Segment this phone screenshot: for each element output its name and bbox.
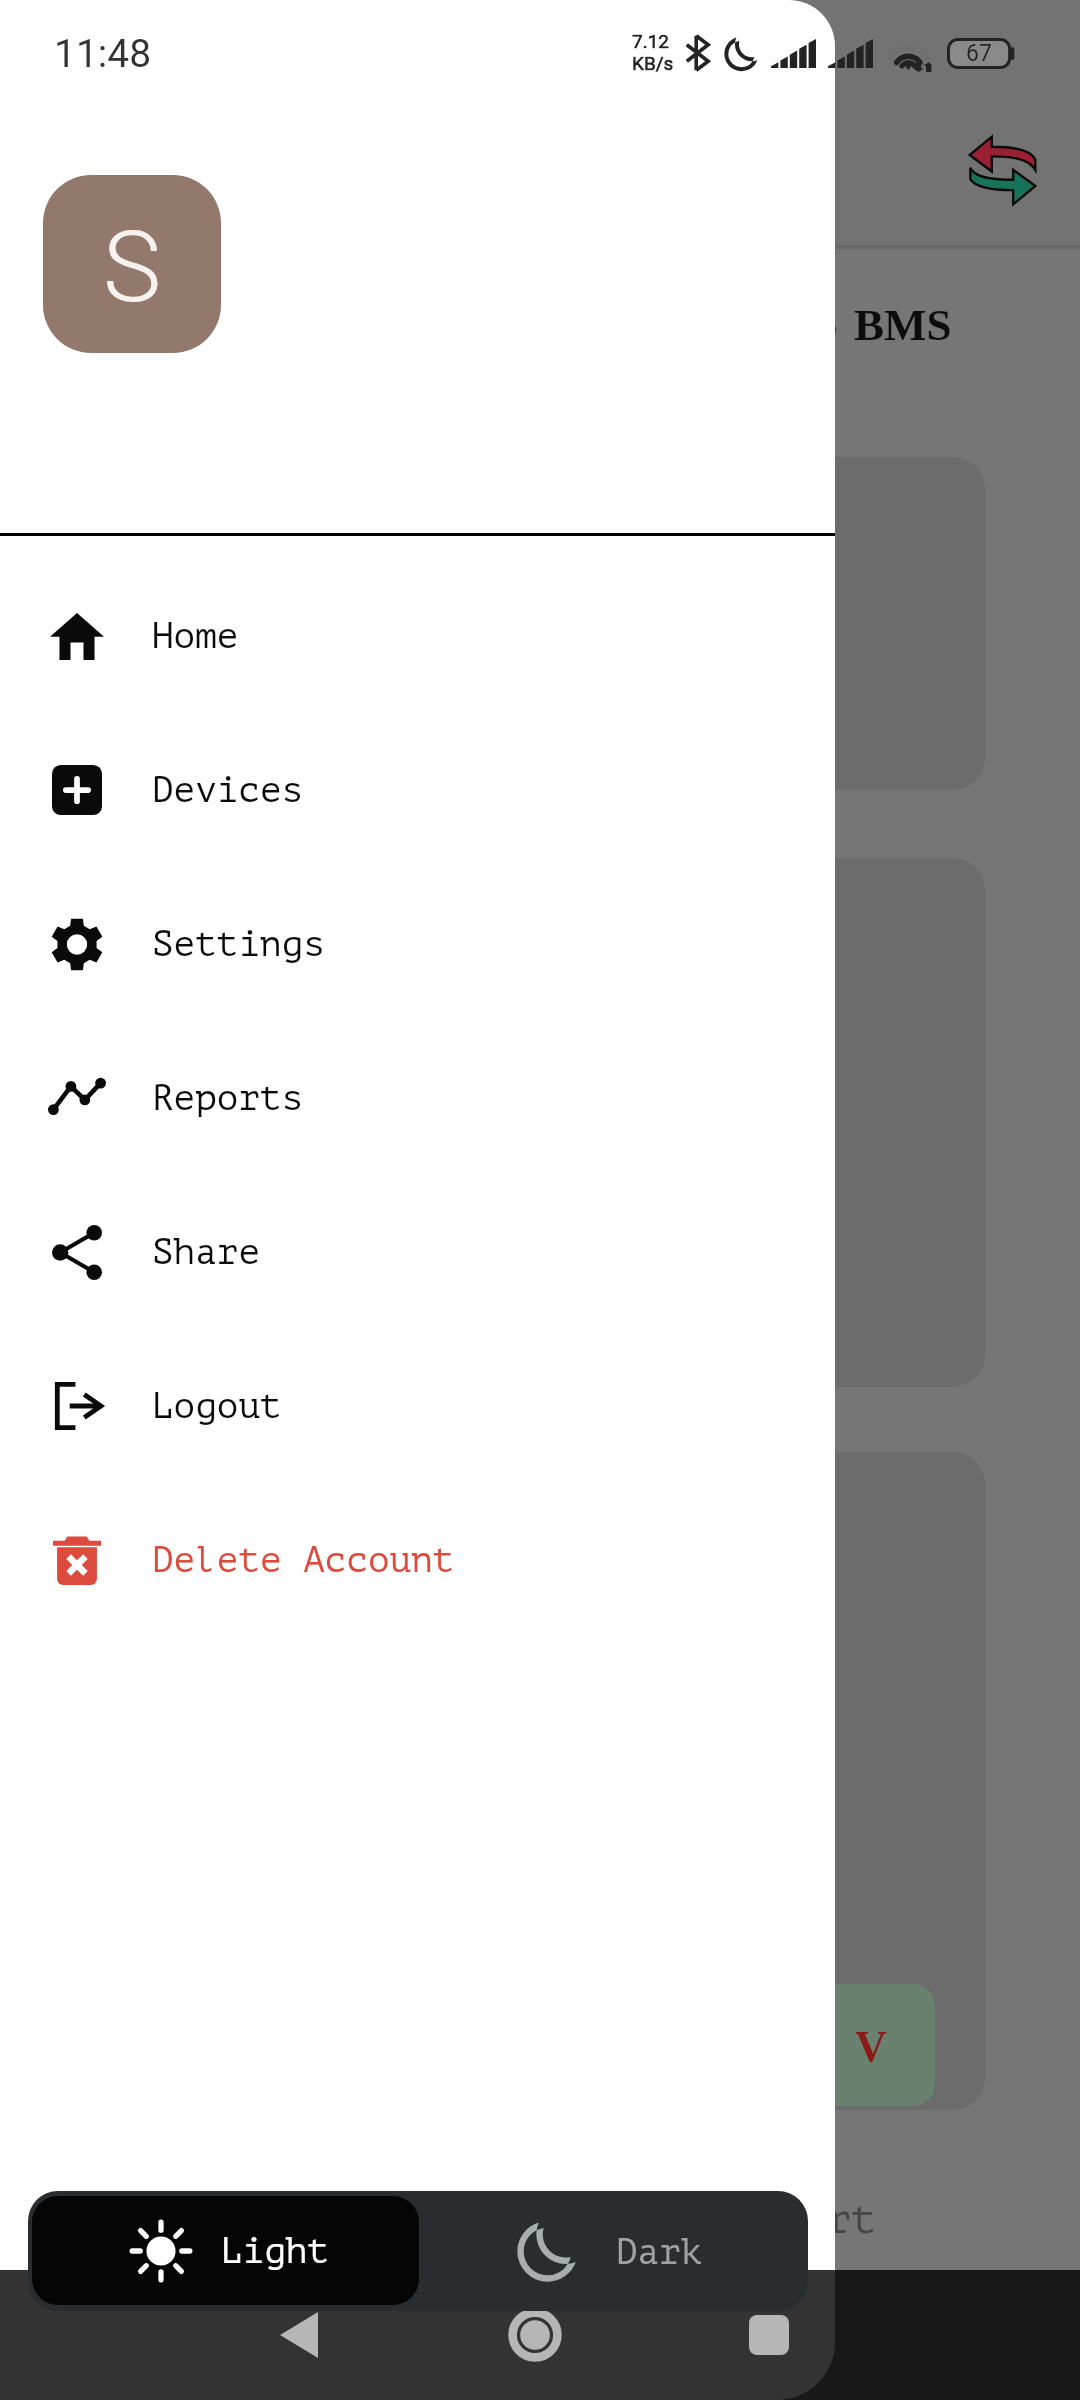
staticText: 7.12 (632, 30, 670, 52)
staticText: Logout (152, 1386, 282, 1426)
button[interactable]: Home (0, 559, 835, 713)
staticText: Delete Account (152, 1540, 455, 1580)
staticText: Devices (152, 770, 304, 810)
button[interactable]: Logout (0, 1329, 835, 1483)
staticText: 67 (966, 40, 992, 67)
staticText: o (815, 300, 838, 350)
staticText: KB/s (632, 52, 674, 74)
staticText: 11:48 (54, 31, 152, 77)
button[interactable]: Home (490, 2290, 580, 2380)
button[interactable]: Settings (0, 867, 835, 1021)
button[interactable]: Light (32, 2196, 419, 2305)
button[interactable]: Reports (0, 1021, 835, 1175)
staticText: Reports (152, 1078, 304, 1118)
staticText: V (855, 2022, 887, 2071)
staticText: Light (221, 2231, 330, 2271)
staticText: BMS (854, 300, 952, 350)
button[interactable]: Delete Account (0, 1483, 835, 1637)
staticText: rt (826, 2196, 877, 2243)
staticText: Home (152, 616, 239, 656)
staticText: Share (152, 1232, 261, 1272)
staticText: Settings (152, 924, 325, 964)
button[interactable]: Recent apps (724, 2290, 814, 2380)
button[interactable]: Dark (419, 2191, 808, 2311)
button[interactable]: Share (0, 1175, 835, 1329)
button[interactable]: S (43, 175, 221, 353)
staticText: S (103, 210, 162, 325)
staticText: Dark (616, 2232, 703, 2272)
button[interactable]: Back (254, 2290, 344, 2380)
button[interactable]: Devices (0, 713, 835, 867)
